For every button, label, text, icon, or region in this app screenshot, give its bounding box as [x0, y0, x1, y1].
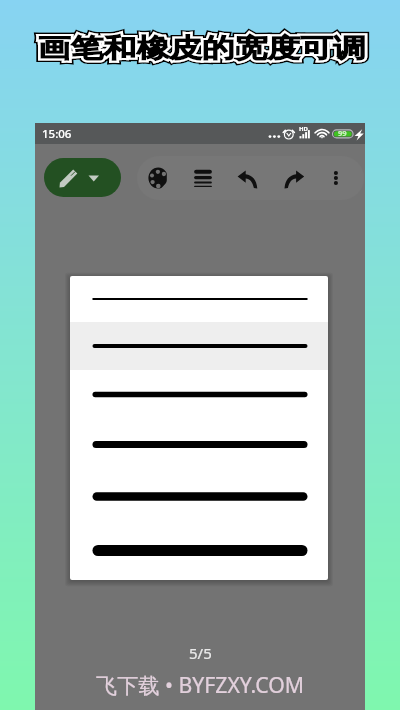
- button[interactable]: Stroke width 6: [70, 523, 328, 578]
- staticText: 画笔和橡皮的宽度可调: [38, 32, 366, 65]
- button[interactable]: More options: [313, 156, 357, 200]
- staticText: HD: [299, 125, 308, 133]
- staticText: 画笔和橡皮的宽度可调: [38, 32, 366, 65]
- button[interactable]: Undo: [225, 156, 269, 200]
- staticText: 5/5: [189, 643, 212, 663]
- staticText: 15:06: [42, 126, 72, 142]
- staticText: 飞下载 • BYFZXY.COM: [96, 670, 304, 699]
- staticText: 画笔和橡皮的宽度可调: [38, 32, 366, 65]
- button[interactable]: Stroke width 3: [70, 370, 328, 419]
- button[interactable]: Stroke width 1: [70, 276, 328, 322]
- button[interactable]: Pen tool: [44, 158, 121, 197]
- staticText: 99: [338, 128, 347, 138]
- button[interactable]: Stroke width: [181, 156, 225, 200]
- button[interactable]: Stroke width 4: [70, 419, 328, 470]
- button[interactable]: Stroke width 2: [70, 322, 328, 370]
- button[interactable]: Stroke width 5: [70, 470, 328, 523]
- button[interactable]: Color palette: [137, 156, 181, 200]
- button[interactable]: Redo: [269, 156, 313, 200]
